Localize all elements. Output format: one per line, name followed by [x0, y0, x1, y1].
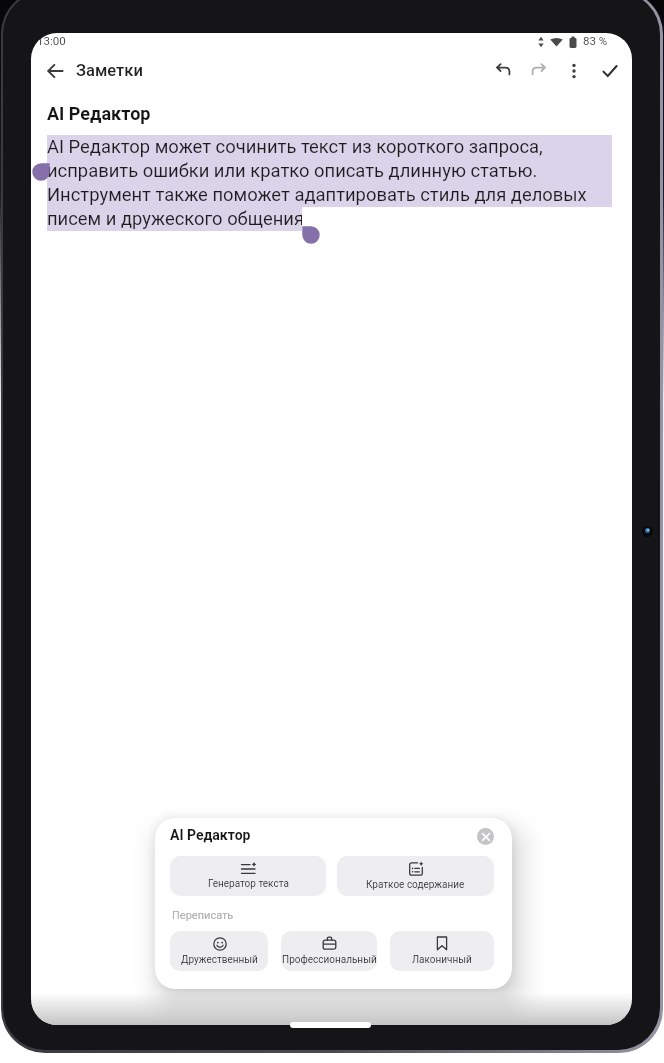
staticText: AI Редактор	[47, 103, 151, 124]
staticText: 13:00	[37, 34, 66, 47]
staticText: 83 %	[583, 34, 608, 47]
button[interactable]: Генератор текста	[170, 856, 326, 896]
staticText: Профессиональный	[282, 954, 377, 966]
staticText: писем и дружеского общения	[47, 208, 302, 230]
staticText: Дружественный	[181, 954, 258, 966]
button[interactable]: Лаконичный	[390, 931, 494, 971]
button[interactable]	[487, 55, 519, 87]
button[interactable]	[594, 55, 626, 87]
staticText: Краткое содержание	[366, 879, 465, 891]
button[interactable]	[523, 55, 555, 87]
staticText: Лаконичный	[412, 954, 472, 966]
button[interactable]: Профессиональный	[281, 931, 377, 971]
button[interactable]: Дружественный	[170, 931, 268, 971]
staticText: Генератор текста	[208, 878, 289, 890]
button[interactable]	[477, 828, 494, 845]
staticText: Инструмент также поможет адаптировать ст…	[47, 184, 587, 206]
button[interactable]	[558, 55, 590, 87]
staticText: Заметки	[76, 61, 143, 80]
staticText: AI Редактор	[170, 827, 251, 843]
button[interactable]: Краткое содержание	[337, 856, 494, 896]
staticText: AI Редактор может сочинить текст из коро…	[47, 136, 543, 158]
staticText: исправить ошибки или кратко описать длин…	[47, 160, 538, 182]
staticText: Переписать	[172, 909, 234, 922]
button[interactable]	[39, 55, 71, 87]
